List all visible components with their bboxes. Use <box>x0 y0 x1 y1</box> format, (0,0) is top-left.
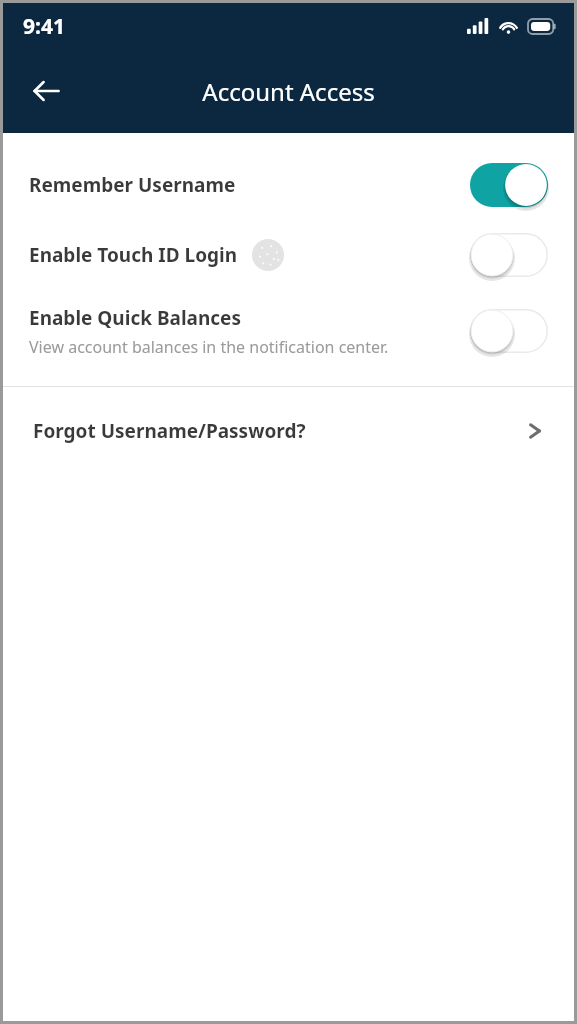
button[interactable]: Toggle off <box>470 309 548 353</box>
staticText: Enable Touch ID Login <box>29 242 238 268</box>
staticText: View account balances in the notificatio… <box>29 336 389 358</box>
button[interactable]: Enable Touch ID Login <box>3 220 574 290</box>
button[interactable]: Toggle on <box>470 163 548 207</box>
button[interactable]: Back <box>17 62 75 120</box>
staticText: Account Access <box>202 75 375 108</box>
staticText: Remember Username <box>29 172 236 198</box>
staticText: Enable Quick Balances <box>29 305 242 331</box>
button[interactable]: Enable Quick Balances <box>3 290 574 372</box>
button[interactable]: Forgot Username/Password? <box>3 387 574 475</box>
button[interactable]: Toggle off <box>470 233 548 277</box>
staticText: 9:41 <box>23 12 65 41</box>
button[interactable]: Remember Username <box>3 150 574 220</box>
staticText: Forgot Username/Password? <box>33 418 524 444</box>
